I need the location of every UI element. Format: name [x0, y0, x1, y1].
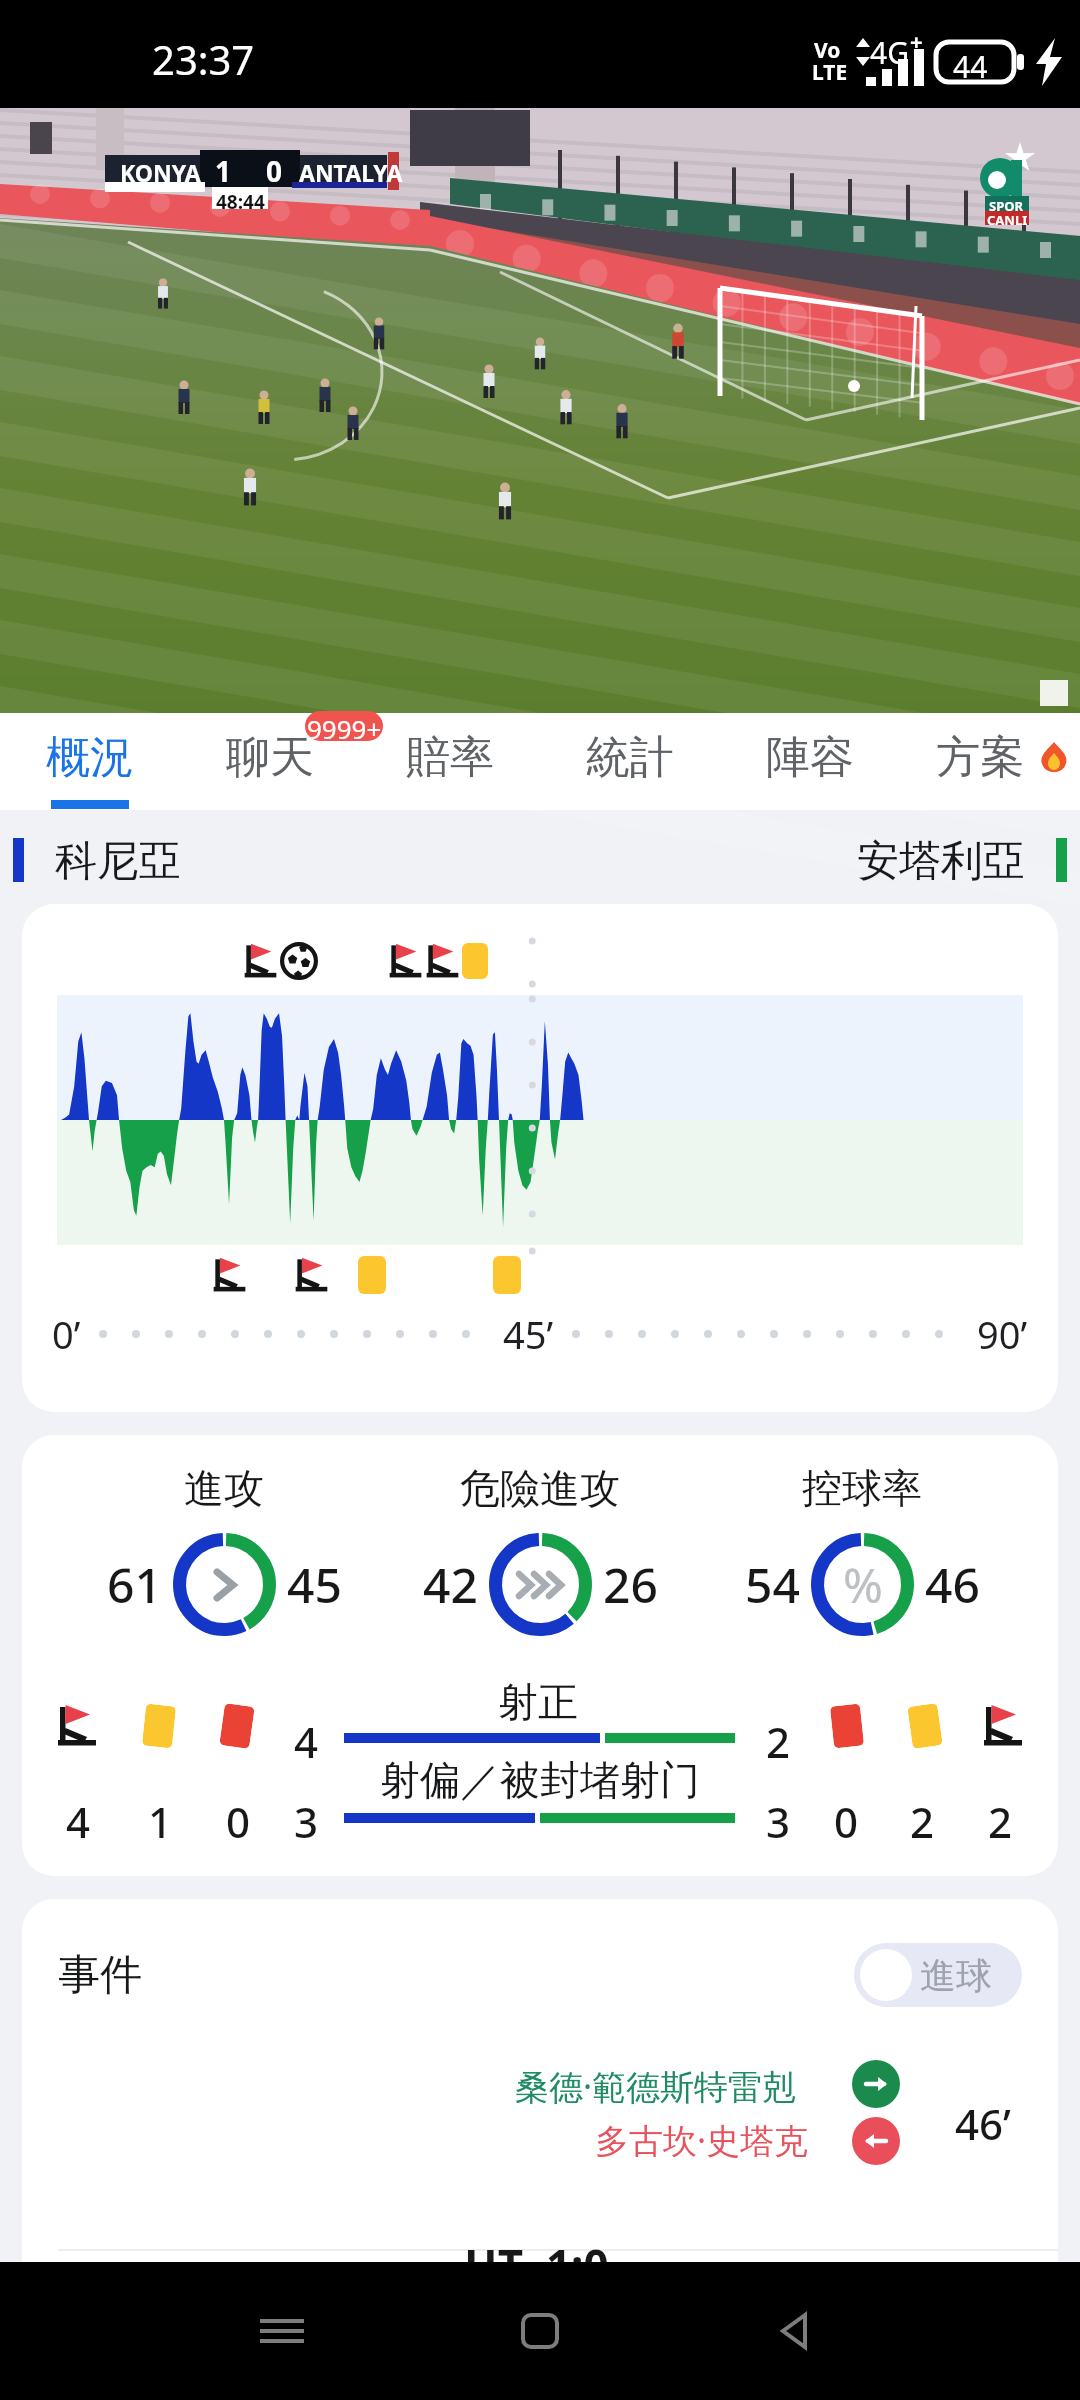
staticText: 陣容 [766, 730, 854, 785]
staticText: 聊天 [226, 730, 314, 785]
staticText: % [843, 1552, 883, 1617]
staticText: SPOR [989, 197, 1024, 215]
staticText: 46 [925, 1552, 980, 1617]
button[interactable]: 事件 [22, 1899, 1058, 2329]
staticText: 45 [287, 1552, 342, 1617]
staticText: 3 [294, 1793, 319, 1850]
staticText: 賠率 [406, 730, 494, 785]
staticText: 危險進攻 [460, 1463, 620, 1513]
staticText: 2 [766, 1713, 791, 1770]
staticText: 事件 [58, 1949, 142, 2002]
staticText: 概況 [46, 730, 134, 785]
staticText: 統計 [586, 730, 674, 785]
staticText: 4G [870, 32, 909, 73]
staticText: 桑德·範德斯特雷剋 [515, 2063, 797, 2109]
staticText: 61 [107, 1552, 162, 1617]
button[interactable]: 賠率 [360, 713, 540, 810]
button[interactable]: 0’ [22, 904, 1058, 1412]
staticText: CANLI [987, 211, 1028, 229]
staticText: KONYA [120, 157, 201, 188]
staticText: 54 [745, 1552, 800, 1617]
staticText: 1 [148, 1793, 173, 1850]
button[interactable]: Back [752, 2286, 842, 2376]
button[interactable]: Recent apps [237, 2286, 327, 2376]
button[interactable]: 概況 [0, 713, 180, 810]
staticText: 42 [423, 1552, 478, 1617]
button[interactable]: 統計 [540, 713, 720, 810]
staticText: 3 [766, 1793, 791, 1850]
staticText: 48:44 [216, 189, 265, 215]
button[interactable]: 聊天 [180, 713, 360, 810]
staticText: 2 [910, 1793, 935, 1850]
staticText: 0 [834, 1793, 859, 1850]
staticText: 安塔利亞 [857, 835, 1025, 888]
staticText: 46’ [955, 2095, 1011, 2152]
staticText: 23:37 [152, 32, 255, 86]
button[interactable]: Live video player [0, 108, 1080, 713]
staticText: 1 [215, 152, 232, 190]
staticText: 科尼亞 [55, 835, 181, 888]
button[interactable]: 陣容 [720, 713, 900, 810]
staticText: + [910, 26, 923, 56]
button[interactable]: 方案 [900, 713, 1080, 810]
staticText: 4 [66, 1793, 91, 1850]
button[interactable]: Toggle goals filter [854, 1943, 1022, 2007]
staticText: LTE [812, 58, 848, 87]
staticText: 進攻 [184, 1463, 264, 1513]
staticText: 2 [988, 1793, 1013, 1850]
staticText: 90’ [977, 1308, 1028, 1360]
staticText: 射偏／被封堵射门 [380, 1755, 700, 1805]
staticText: 45’ [503, 1308, 554, 1360]
staticText: 0’ [52, 1308, 81, 1360]
staticText: 進球 [920, 1953, 992, 1998]
staticText: 0 [266, 152, 283, 190]
staticText: 26 [603, 1552, 658, 1617]
staticText: HT 1:0 [464, 2235, 609, 2295]
staticText: 9999+ [307, 711, 382, 741]
staticText: 射正 [498, 1677, 578, 1727]
button[interactable]: Home [495, 2286, 585, 2376]
button[interactable]: 進攻 [22, 1435, 1058, 1876]
staticText: 控球率 [802, 1463, 922, 1513]
staticText: ANTALYA [299, 157, 403, 188]
staticText: 4 [294, 1713, 319, 1770]
staticText: 方案 [936, 730, 1024, 785]
staticText: 0 [226, 1793, 251, 1850]
staticText: Vo [814, 36, 841, 65]
staticText: 多古坎·史塔克 [595, 2117, 809, 2163]
staticText: 44 [953, 46, 988, 87]
